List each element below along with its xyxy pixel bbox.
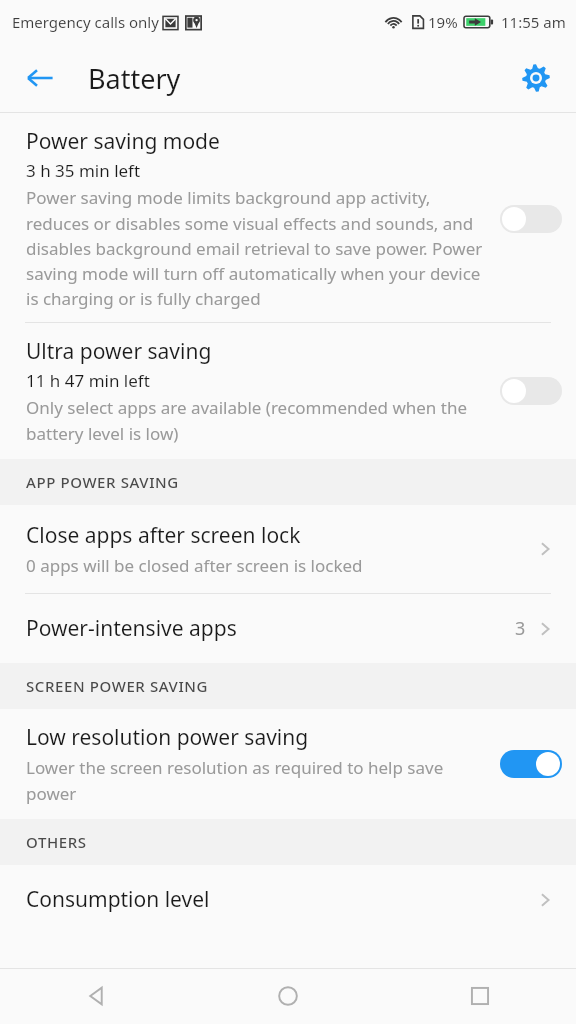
button[interactable]: Back bbox=[14, 52, 66, 104]
button[interactable]: Recents bbox=[384, 968, 576, 1024]
staticText: 11 h 47 min left bbox=[26, 369, 150, 392]
button[interactable]: Power saving mode bbox=[0, 113, 576, 322]
staticText: 3 bbox=[515, 616, 526, 641]
staticText: Emergency calls only bbox=[12, 12, 159, 32]
button[interactable]: Low resolution power saving bbox=[0, 709, 576, 819]
button[interactable]: On bbox=[500, 750, 562, 778]
staticText: 19% bbox=[428, 12, 458, 32]
button[interactable]: Home bbox=[192, 968, 384, 1024]
staticText: Lower the screen resolution as required … bbox=[26, 756, 486, 805]
staticText: Ultra power saving bbox=[26, 337, 212, 366]
button[interactable]: Close apps after screen lock bbox=[0, 505, 576, 593]
staticText: 11:55 am bbox=[501, 12, 566, 32]
staticText: Close apps after screen lock bbox=[26, 521, 301, 550]
staticText: 3 h 35 min left bbox=[26, 159, 141, 182]
button[interactable]: Off bbox=[500, 205, 562, 233]
staticText: Power-intensive apps bbox=[26, 614, 515, 643]
button[interactable]: Consumption level bbox=[0, 865, 576, 914]
button[interactable]: Ultra power saving bbox=[0, 323, 576, 459]
button[interactable]: Back bbox=[0, 968, 192, 1024]
staticText: 0 apps will be closed after screen is lo… bbox=[26, 554, 363, 577]
staticText: Low resolution power saving bbox=[26, 723, 309, 752]
staticText: OTHERS bbox=[26, 832, 87, 852]
button[interactable]: Settings bbox=[510, 52, 562, 104]
staticText: Power saving mode bbox=[26, 127, 220, 156]
staticText: Consumption level bbox=[26, 885, 534, 914]
staticText: Only select apps are available (recommen… bbox=[26, 396, 486, 445]
staticText: Power saving mode limits background app … bbox=[26, 186, 486, 310]
staticText: SCREEN POWER SAVING bbox=[26, 676, 209, 696]
staticText: APP POWER SAVING bbox=[26, 472, 179, 492]
button[interactable]: Power-intensive apps bbox=[0, 594, 576, 663]
button[interactable]: Off bbox=[500, 377, 562, 405]
staticText: Battery bbox=[88, 60, 181, 97]
